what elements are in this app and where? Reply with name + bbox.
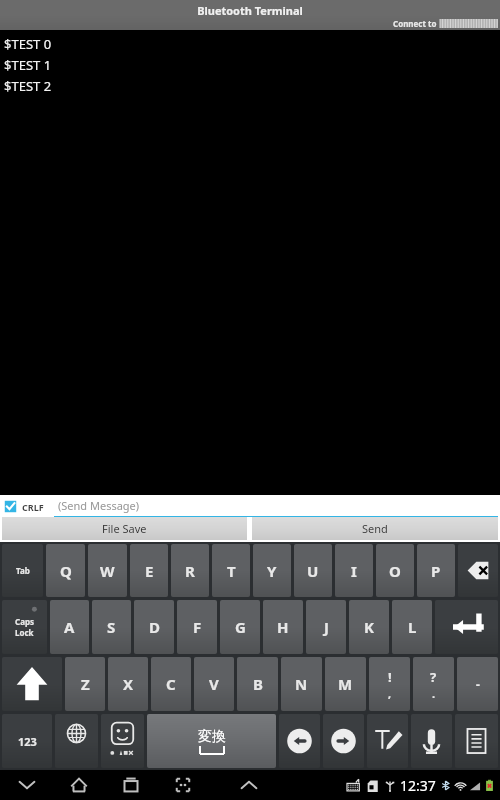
staticText: 123 <box>18 734 37 749</box>
button[interactable]: L <box>392 600 432 654</box>
button[interactable]: C <box>151 657 191 711</box>
staticText: P <box>431 561 441 581</box>
button[interactable]: - <box>457 657 498 711</box>
staticText: B <box>253 674 263 694</box>
staticText: X <box>123 674 134 694</box>
staticText: M <box>338 674 353 694</box>
staticText: $TEST 0 <box>4 35 52 53</box>
button[interactable]: CRLF <box>4 500 44 513</box>
button[interactable]: D <box>134 600 174 654</box>
staticText: CRLF <box>22 501 44 513</box>
staticText: J <box>324 617 329 637</box>
staticText: 変換 <box>198 728 226 746</box>
staticText: Send <box>362 521 388 536</box>
button[interactable]: F <box>177 600 217 654</box>
button[interactable]: (Send Message) <box>54 495 498 517</box>
staticText: O <box>389 561 401 581</box>
button[interactable]: M <box>325 657 366 711</box>
staticText: Z <box>81 674 90 694</box>
button[interactable]: Screenshot <box>170 772 196 798</box>
button[interactable]: Switch input language <box>55 714 98 768</box>
staticText: N <box>295 674 308 694</box>
staticText: ! <box>388 668 392 686</box>
staticText: V <box>209 674 219 694</box>
button[interactable]: Edit text <box>367 714 408 768</box>
button[interactable]: ? <box>413 657 454 711</box>
button[interactable]: S <box>92 600 131 654</box>
staticText: Lock <box>15 627 34 638</box>
button[interactable]: Caps <box>2 600 47 654</box>
staticText: $TEST 1 <box>4 56 52 74</box>
staticText: H <box>277 617 289 637</box>
staticText: (Send Message) <box>58 498 140 513</box>
button[interactable]: Tab <box>2 544 43 597</box>
staticText: D <box>149 617 160 637</box>
staticText: Q <box>60 561 72 581</box>
button[interactable]: File Save <box>2 517 247 540</box>
staticText: K <box>364 617 374 637</box>
button[interactable]: U <box>294 544 332 597</box>
button[interactable]: K <box>349 600 389 654</box>
button[interactable]: A <box>50 600 89 654</box>
staticText: S <box>107 617 116 637</box>
button[interactable]: R <box>171 544 209 597</box>
staticText: Y <box>267 561 277 581</box>
staticText: 12:37 <box>400 776 436 795</box>
button[interactable]: Move cursor right <box>323 714 364 768</box>
button[interactable]: T <box>212 544 250 597</box>
staticText: A <box>64 617 75 637</box>
button[interactable]: Backspace <box>458 544 498 597</box>
staticText: G <box>235 617 246 637</box>
button[interactable]: Shift <box>2 657 62 711</box>
staticText: Caps <box>15 616 34 627</box>
staticText: . <box>432 686 436 701</box>
button[interactable]: Recent apps <box>118 772 144 798</box>
button[interactable]: Y <box>253 544 291 597</box>
button[interactable]: P <box>417 544 455 597</box>
button[interactable]: Clipboard <box>455 714 498 768</box>
button[interactable]: I <box>335 544 373 597</box>
button[interactable]: G <box>220 600 260 654</box>
button[interactable]: $TEST 0 <box>0 30 500 495</box>
staticText: Connect to <box>393 18 437 29</box>
staticText: W <box>100 561 115 581</box>
button[interactable]: W <box>88 544 127 597</box>
button[interactable]: Home <box>66 772 92 798</box>
button[interactable]: Expand <box>236 772 262 798</box>
button[interactable]: Voice input <box>411 714 452 768</box>
button[interactable]: V <box>194 657 234 711</box>
button[interactable]: Send <box>252 517 498 540</box>
button[interactable]: H <box>263 600 303 654</box>
button[interactable]: B <box>237 657 278 711</box>
staticText: L <box>408 617 417 637</box>
button[interactable]: Emoji <box>101 714 144 768</box>
staticText: Bluetooth Terminal <box>197 3 303 18</box>
button[interactable]: Move cursor left <box>279 714 320 768</box>
button[interactable]: Enter <box>435 600 498 654</box>
staticText: F <box>193 617 202 637</box>
staticText: File Save <box>102 521 147 536</box>
button[interactable]: 123 <box>2 714 52 768</box>
staticText: $TEST 2 <box>4 77 52 95</box>
staticText: R <box>185 561 195 581</box>
staticText: E <box>145 561 154 581</box>
staticText: - <box>476 676 480 692</box>
button[interactable]: E <box>130 544 168 597</box>
staticText: Tab <box>16 565 30 576</box>
button[interactable]: Q <box>46 544 85 597</box>
staticText: T <box>227 561 236 581</box>
staticText: I <box>351 561 357 581</box>
staticText: , <box>388 686 392 701</box>
button[interactable]: O <box>376 544 414 597</box>
button[interactable]: 変換 <box>147 714 276 768</box>
button[interactable]: ! <box>369 657 410 711</box>
button[interactable]: X <box>108 657 148 711</box>
button[interactable]: J <box>306 600 346 654</box>
button[interactable]: Connect to <box>393 18 498 29</box>
staticText: U <box>307 561 319 581</box>
button[interactable]: N <box>281 657 322 711</box>
button[interactable]: Hide keyboard <box>14 772 40 798</box>
staticText: C <box>166 674 176 694</box>
button[interactable]: Z <box>65 657 105 711</box>
staticText: ? <box>430 668 437 686</box>
